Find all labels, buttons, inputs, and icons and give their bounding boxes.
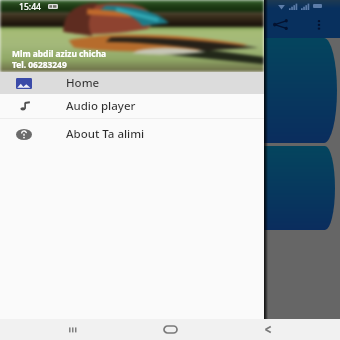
button[interactable]: Recents (52, 319, 92, 340)
button[interactable]: Home (150, 319, 190, 340)
button[interactable]: Home (0, 72, 264, 94)
button[interactable]: Back (248, 319, 288, 340)
button[interactable]: Audio player (0, 94, 264, 118)
staticText: 15:44 (19, 1, 42, 13)
staticText: About Ta alimi (66, 126, 145, 142)
staticText: Tel. 06283249 (12, 59, 67, 70)
button[interactable]: More options (310, 14, 328, 34)
staticText: Audio player (66, 98, 136, 114)
button[interactable]: About Ta alimi (0, 121, 264, 147)
staticText: Mlm abdil azizu chicha (12, 48, 107, 59)
button[interactable]: Share (268, 14, 292, 34)
staticText: Home (66, 75, 100, 91)
